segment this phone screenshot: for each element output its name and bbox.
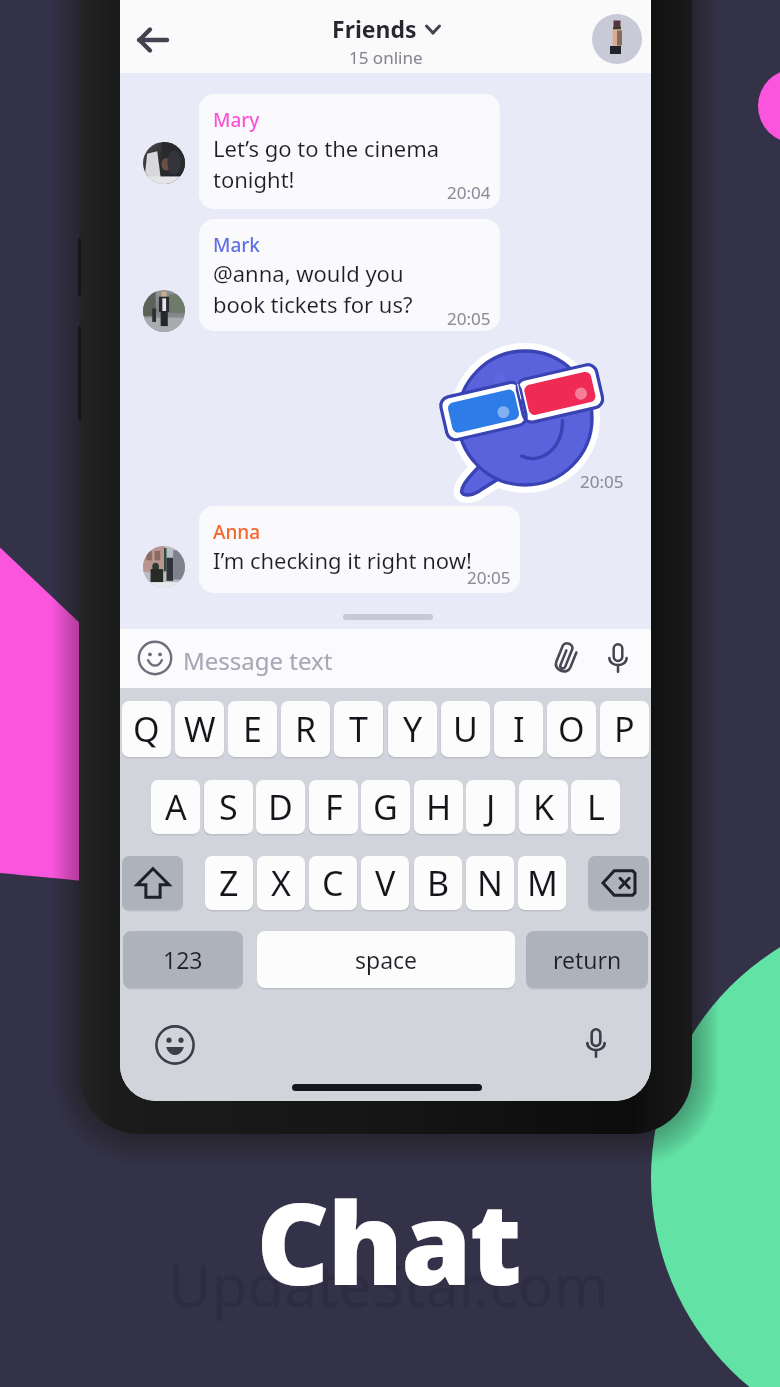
staticText: Anna — [213, 519, 261, 545]
button[interactable]: Mark — [199, 219, 500, 331]
staticText: 20:05 — [580, 470, 624, 493]
staticText: M — [527, 860, 558, 906]
staticText: UpdateStar.com — [168, 1244, 609, 1324]
button[interactable]: B — [414, 856, 462, 910]
staticText: Chat — [256, 1164, 520, 1318]
staticText: O — [558, 706, 585, 752]
staticText: V — [375, 860, 396, 906]
staticText: I’m checking it right now! — [213, 545, 472, 575]
staticText: space — [355, 944, 418, 975]
button[interactable]: Mary — [199, 94, 500, 209]
button[interactable]: V — [361, 856, 409, 910]
button[interactable]: G — [361, 780, 410, 834]
staticText: L — [587, 784, 605, 830]
staticText: C — [322, 860, 344, 906]
button[interactable]: R — [281, 701, 330, 757]
staticText: N — [477, 860, 503, 906]
button[interactable]: I — [494, 701, 543, 757]
button[interactable]: W — [175, 701, 224, 757]
button[interactable]: H — [414, 780, 463, 834]
button[interactable]: Q — [122, 701, 171, 757]
staticText: Z — [219, 860, 239, 906]
staticText: S — [219, 784, 238, 830]
staticText: F — [325, 784, 343, 830]
staticText: B — [427, 860, 450, 906]
button[interactable]: Back — [127, 14, 179, 66]
staticText: Let’s go to the cinema — [213, 133, 440, 163]
button[interactable]: X — [257, 856, 305, 910]
staticText: Mark — [213, 232, 260, 258]
button[interactable]: K — [519, 780, 568, 834]
staticText: I — [513, 706, 525, 752]
button[interactable]: Attach file — [548, 640, 584, 676]
button[interactable]: S — [204, 780, 253, 834]
button[interactable]: Shift — [122, 856, 183, 910]
button[interactable]: C — [309, 856, 357, 910]
button[interactable]: Z — [205, 856, 253, 910]
staticText: 20:05 — [467, 566, 511, 589]
staticText: Message text — [183, 644, 333, 677]
staticText: book tickets for us? — [213, 289, 413, 319]
staticText: Mary — [213, 107, 260, 133]
staticText: @anna, would you — [213, 258, 404, 288]
button[interactable]: N — [466, 856, 514, 910]
button[interactable]: Y — [388, 701, 437, 757]
staticText: T — [349, 706, 368, 752]
button[interactable]: L — [571, 780, 620, 834]
staticText: P — [614, 706, 635, 752]
button[interactable]: 123 — [123, 931, 243, 988]
staticText: 15 online — [349, 46, 423, 69]
staticText: A — [165, 784, 187, 830]
button[interactable]: F — [309, 780, 358, 834]
staticText: return — [553, 944, 622, 975]
staticText: tonight! — [213, 164, 295, 194]
staticText: G — [373, 784, 398, 830]
button[interactable]: T — [334, 701, 383, 757]
button[interactable]: Emoji keyboard — [155, 1025, 195, 1065]
staticText: J — [486, 784, 496, 830]
staticText: U — [453, 706, 478, 752]
staticText: D — [268, 784, 293, 830]
button[interactable]: P — [600, 701, 649, 757]
button[interactable]: Sticker: cool face — [445, 340, 605, 500]
staticText: K — [533, 784, 555, 830]
staticText: 20:04 — [447, 181, 491, 204]
button[interactable]: A — [151, 780, 200, 834]
button[interactable]: Record voice message — [600, 640, 636, 676]
button[interactable]: Anna avatar — [143, 546, 185, 588]
button[interactable]: Mary avatar — [143, 142, 185, 184]
staticText: X — [271, 860, 291, 906]
staticText: H — [426, 784, 452, 830]
button[interactable]: Dictate — [578, 1025, 614, 1061]
button[interactable]: Delete — [588, 856, 649, 910]
button[interactable]: return — [526, 931, 648, 988]
button[interactable]: J — [466, 780, 515, 834]
staticText: W — [184, 706, 216, 752]
staticText: Friends — [332, 13, 417, 44]
staticText: Y — [403, 706, 423, 752]
button[interactable]: U — [441, 701, 490, 757]
button[interactable]: space — [257, 931, 515, 988]
staticText: E — [243, 706, 262, 752]
button[interactable]: M — [518, 856, 566, 910]
button[interactable]: O — [547, 701, 596, 757]
button[interactable]: Profile — [592, 14, 642, 64]
staticText: 20:05 — [447, 307, 491, 330]
button[interactable]: E — [228, 701, 277, 757]
staticText: R — [295, 706, 317, 752]
button[interactable]: Emoji — [137, 640, 173, 676]
button[interactable]: D — [256, 780, 305, 834]
button[interactable]: Friends — [328, 13, 444, 44]
staticText: 123 — [163, 944, 203, 975]
button[interactable]: Mark avatar — [143, 290, 185, 332]
staticText: Q — [133, 706, 160, 752]
button[interactable]: Anna — [199, 506, 520, 593]
